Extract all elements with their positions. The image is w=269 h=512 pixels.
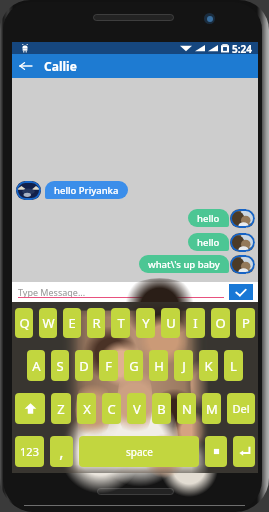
staticText: L xyxy=(230,357,237,375)
button[interactable]: Shift xyxy=(15,393,45,424)
staticText: R xyxy=(92,314,101,332)
button[interactable]: K xyxy=(199,350,218,381)
button[interactable]: P xyxy=(236,308,255,338)
button[interactable]: R xyxy=(87,308,105,338)
staticText: hello xyxy=(197,212,220,225)
button[interactable]: F xyxy=(99,350,118,381)
staticText: B xyxy=(157,400,166,418)
staticText: hello Priyanka xyxy=(54,184,119,197)
staticText: I xyxy=(193,314,198,332)
button[interactable]: A xyxy=(27,350,45,381)
staticText: hello xyxy=(197,236,220,249)
staticText: V xyxy=(133,400,141,418)
button[interactable]: space xyxy=(79,436,199,467)
staticText: Callie xyxy=(44,58,77,74)
staticText: K xyxy=(204,357,213,375)
button[interactable]: L xyxy=(224,350,243,381)
button[interactable]: Contact photo xyxy=(16,181,41,200)
staticText: A xyxy=(32,357,41,375)
staticText: D xyxy=(79,357,89,375)
button[interactable]: I xyxy=(186,308,205,338)
staticText: O xyxy=(215,314,226,332)
staticText: what\'s up baby xyxy=(148,258,220,271)
button[interactable]: Back xyxy=(12,54,38,78)
button[interactable]: My photo xyxy=(230,255,255,274)
staticText: J xyxy=(182,357,186,375)
button[interactable]: Y xyxy=(136,308,155,338)
button[interactable]: hello xyxy=(188,209,229,227)
staticText: W xyxy=(42,314,55,332)
button[interactable]: hello xyxy=(188,233,229,251)
staticText: 123 xyxy=(20,444,39,459)
button[interactable]: U xyxy=(161,308,180,338)
button[interactable]: V xyxy=(127,393,146,424)
button[interactable]: Z xyxy=(51,393,71,424)
staticText: C xyxy=(107,400,116,418)
button[interactable]: C xyxy=(102,393,121,424)
button[interactable]: Q xyxy=(15,308,33,338)
button[interactable]: Del xyxy=(227,393,255,424)
button[interactable]: , xyxy=(50,436,73,467)
button[interactable]: Period xyxy=(205,436,227,467)
button[interactable]: D xyxy=(75,350,93,381)
staticText: P xyxy=(242,314,250,332)
staticText: F xyxy=(105,357,112,375)
staticText: M xyxy=(206,400,218,418)
staticText: N xyxy=(182,400,192,418)
button[interactable]: T xyxy=(111,308,130,338)
button[interactable]: B xyxy=(152,393,171,424)
button[interactable]: My photo xyxy=(230,233,255,252)
staticText: G xyxy=(129,357,139,375)
staticText: S xyxy=(56,357,64,375)
staticText: Type Message... xyxy=(18,286,86,298)
button[interactable]: Send xyxy=(229,284,253,300)
staticText: Del xyxy=(232,401,250,416)
button[interactable]: X xyxy=(77,393,96,424)
staticText: 5:24 xyxy=(232,42,252,54)
staticText: , xyxy=(59,441,64,463)
staticText: E xyxy=(68,314,76,332)
staticText: H xyxy=(154,357,164,375)
staticText: T xyxy=(117,314,125,332)
button[interactable]: W xyxy=(39,308,57,338)
staticText: Y xyxy=(142,314,150,332)
button[interactable]: Enter xyxy=(233,436,255,467)
button[interactable]: J xyxy=(174,350,193,381)
button[interactable]: O xyxy=(211,308,230,338)
staticText: Q xyxy=(19,314,30,332)
staticText: space xyxy=(126,445,153,459)
button[interactable]: E xyxy=(63,308,81,338)
button[interactable]: S xyxy=(51,350,69,381)
button[interactable]: G xyxy=(124,350,143,381)
button[interactable]: 123 xyxy=(15,436,44,467)
button[interactable]: M xyxy=(202,393,221,424)
button[interactable]: what\'s up baby xyxy=(139,255,229,273)
staticText: Z xyxy=(57,400,65,418)
button[interactable]: N xyxy=(177,393,196,424)
button[interactable]: hello Priyanka xyxy=(45,181,128,199)
button[interactable]: My photo xyxy=(230,209,255,228)
staticText: U xyxy=(166,314,176,332)
staticText: X xyxy=(83,400,91,418)
button[interactable]: H xyxy=(149,350,168,381)
